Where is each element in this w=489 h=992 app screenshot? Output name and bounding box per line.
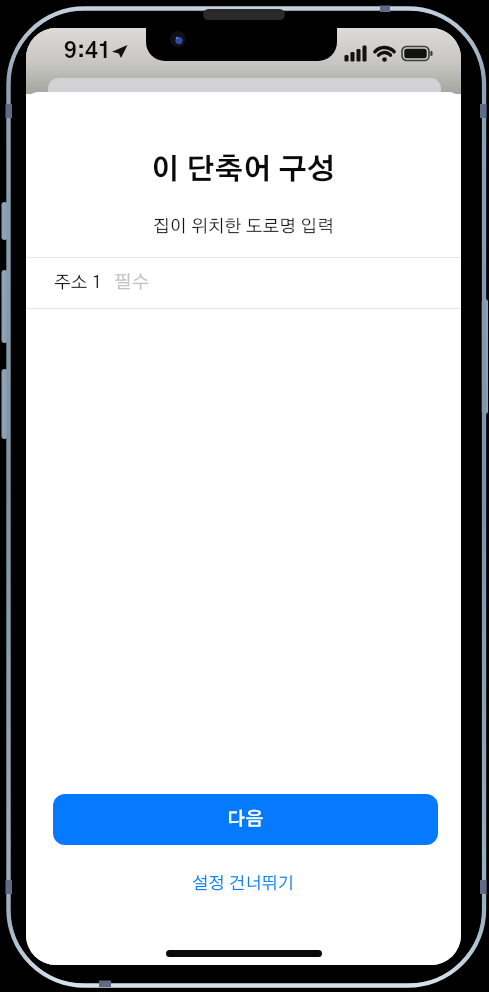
staticText: 필수 — [114, 274, 150, 292]
staticText: 이 단축어 구성 — [151, 156, 336, 185]
staticText: 다음 — [227, 810, 264, 829]
button[interactable]: 다음 — [53, 794, 438, 845]
staticText: 주소 1 — [54, 274, 102, 292]
button[interactable]: 주소 1 — [26, 258, 461, 308]
button[interactable]: 설정 건너뛰기 — [143, 863, 343, 903]
staticText: 설정 건너뛰기 — [192, 875, 295, 892]
staticText: 9:41 — [64, 40, 111, 62]
staticText: 집이 위치한 도로명 입력 — [153, 218, 334, 236]
